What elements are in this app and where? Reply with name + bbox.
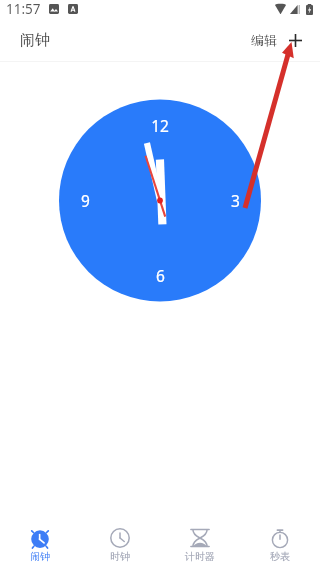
staticText: 闹钟 xyxy=(20,31,50,50)
staticText: 11:57 xyxy=(6,0,41,18)
staticText: 6 xyxy=(156,265,165,283)
button[interactable]: 闹钟 xyxy=(0,513,80,568)
staticText: 时钟 xyxy=(110,550,130,563)
button[interactable]: 时钟 xyxy=(80,513,160,568)
staticText: 秒表 xyxy=(270,550,290,563)
staticText: 编辑 xyxy=(251,32,277,48)
staticText: 3 xyxy=(231,190,240,208)
staticText: 闹钟 xyxy=(30,550,50,563)
button[interactable]: 秒表 xyxy=(240,513,320,568)
button[interactable]: Add alarm xyxy=(282,27,308,53)
staticText: 12 xyxy=(151,115,169,133)
staticText: 计时器 xyxy=(185,550,215,563)
button[interactable]: 计时器 xyxy=(160,513,240,568)
button[interactable]: 编辑 xyxy=(246,26,282,54)
staticText: 9 xyxy=(81,190,90,208)
